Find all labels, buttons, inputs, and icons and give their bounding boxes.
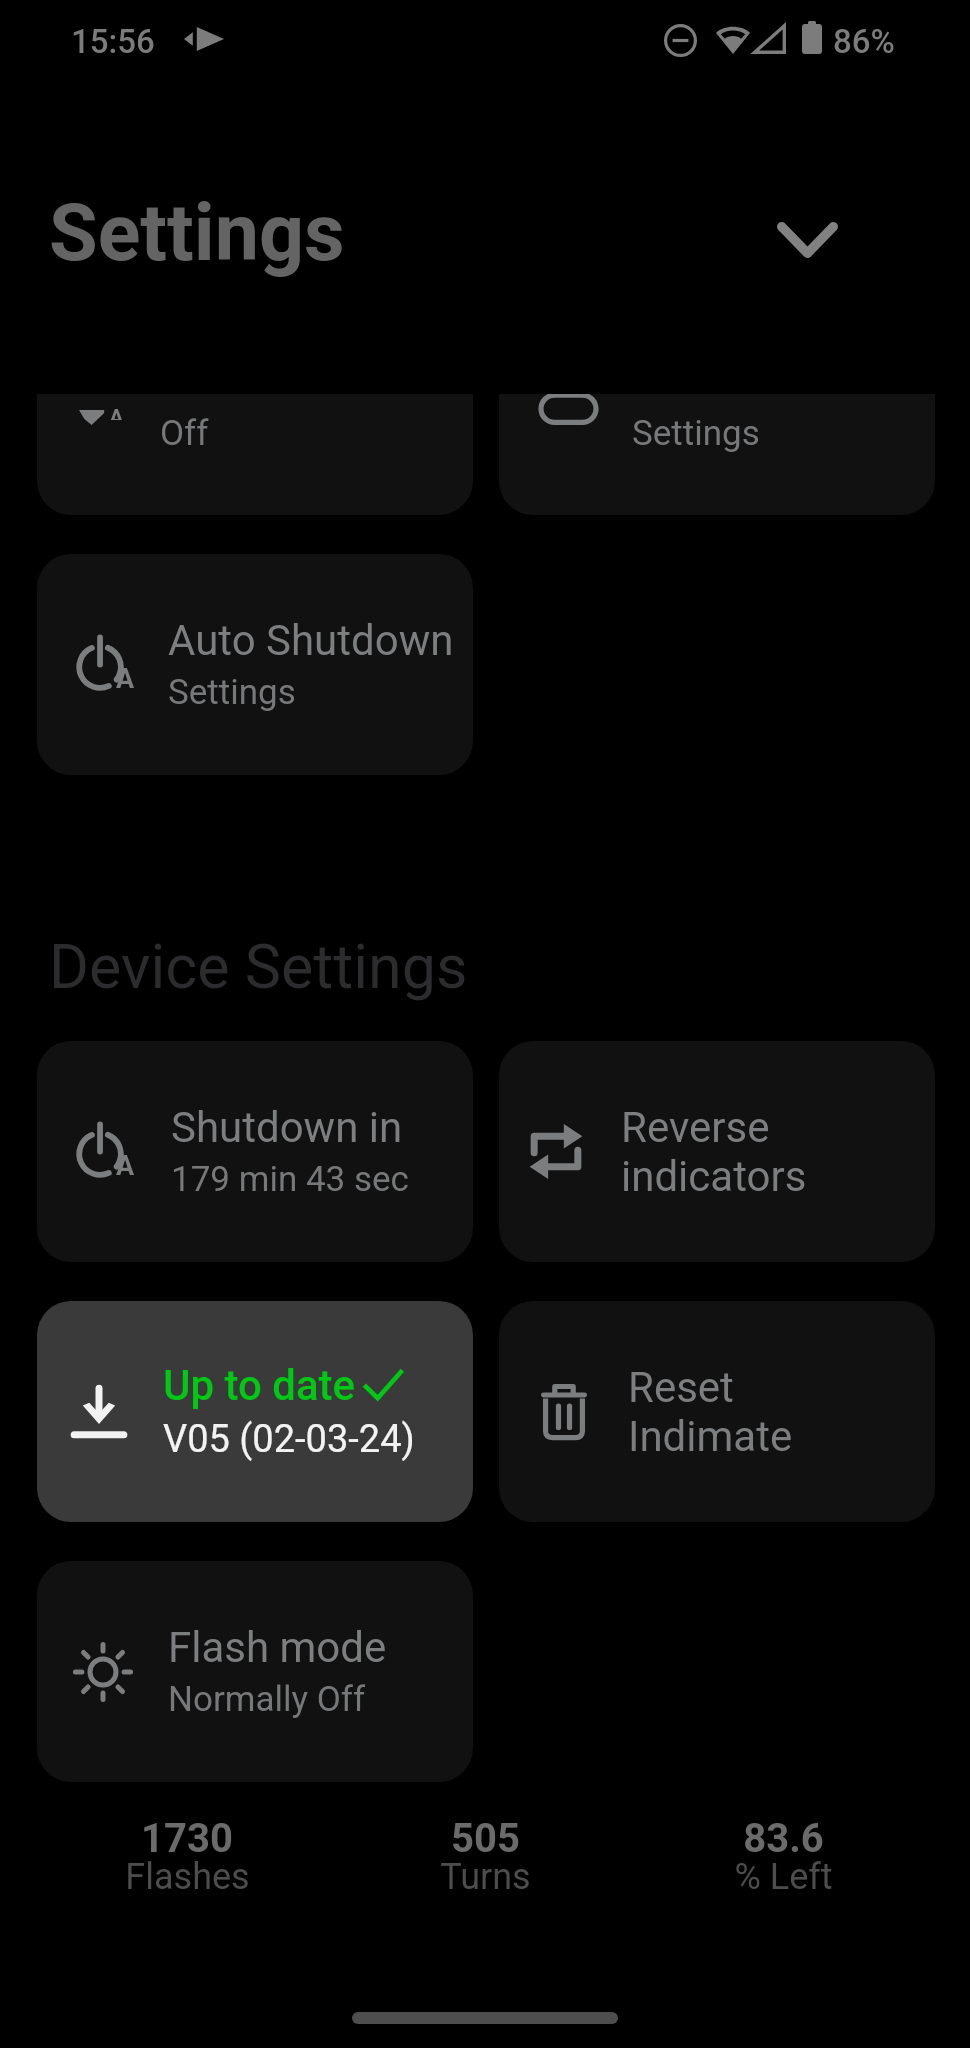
staticText: A (116, 663, 135, 695)
button[interactable]: A (37, 1041, 473, 1262)
button[interactable]: Up to date (37, 1301, 473, 1522)
button[interactable]: Expand settings (761, 194, 853, 286)
staticText: 505 (451, 1815, 520, 1862)
staticText: A (109, 405, 124, 420)
button[interactable]: 83.6 (634, 1815, 932, 1904)
staticText: Reset (628, 1363, 734, 1412)
staticText: Settings (632, 413, 760, 454)
staticText: Indimate (628, 1412, 793, 1461)
staticText: Up to date (163, 1361, 356, 1410)
staticText: 15:56 (71, 22, 155, 61)
button[interactable]: Flash mode (37, 1561, 473, 1782)
staticText: Auto Shutdown (168, 616, 454, 665)
staticText: 83.6 (743, 1815, 824, 1862)
staticText: Settings (168, 672, 296, 713)
staticText: A (116, 1150, 135, 1182)
button[interactable]: A (37, 394, 473, 515)
staticText: Reverse (621, 1103, 770, 1152)
staticText: Device Settings (49, 931, 468, 1002)
button[interactable]: 1730 (38, 1815, 336, 1904)
button[interactable]: Reset (499, 1301, 935, 1522)
staticText: 86% (833, 22, 895, 61)
staticText: 179 min 43 sec (171, 1159, 409, 1200)
staticText: 1730 (141, 1815, 233, 1862)
button[interactable]: 505 (336, 1815, 634, 1904)
staticText: Settings (49, 187, 345, 280)
staticText: Off (160, 413, 209, 454)
staticText: Shutdown in (171, 1103, 403, 1152)
staticText: % Left (734, 1856, 833, 1898)
staticText: indicators (621, 1152, 807, 1201)
button[interactable]: Settings (499, 394, 935, 515)
staticText: Normally Off (168, 1679, 366, 1720)
staticText: Flashes (125, 1856, 250, 1898)
staticText: V05 (02-03-24) (163, 1417, 415, 1462)
button[interactable]: A (37, 554, 473, 775)
staticText: Turns (440, 1856, 531, 1898)
button[interactable]: Reverse (499, 1041, 935, 1262)
staticText: Flash mode (168, 1623, 387, 1672)
